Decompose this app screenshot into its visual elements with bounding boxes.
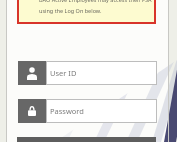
button[interactable]: User xyxy=(18,61,157,85)
other: Password xyxy=(18,99,46,123)
button[interactable]: Password xyxy=(18,99,157,123)
staticText: BAO Active Employees may access their FS… xyxy=(39,0,152,15)
other: User xyxy=(18,61,46,85)
staticText: User ID xyxy=(50,68,77,78)
staticText: Password xyxy=(50,106,84,116)
